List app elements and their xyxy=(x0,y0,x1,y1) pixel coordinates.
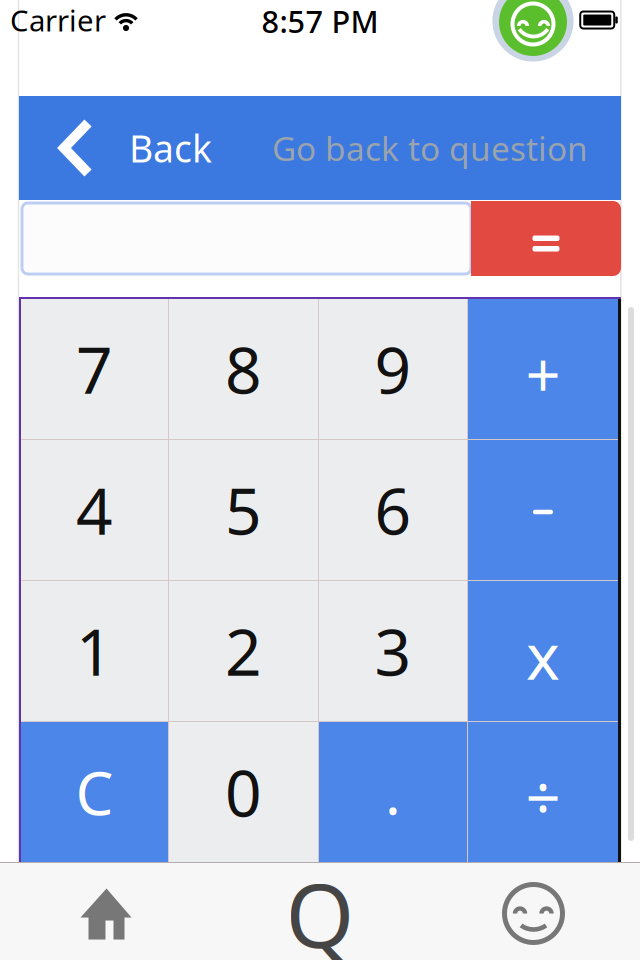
button[interactable]: ÷ xyxy=(468,722,618,862)
button[interactable]: 9 xyxy=(319,299,467,439)
button[interactable]: Back xyxy=(19,119,212,177)
staticText: Back xyxy=(129,123,212,173)
button[interactable]: 8 xyxy=(169,299,318,439)
button[interactable]: 4 xyxy=(21,440,168,580)
button[interactable]: 7 xyxy=(21,299,168,439)
button[interactable]: 0 xyxy=(169,722,318,862)
button[interactable]: 3 xyxy=(319,581,467,721)
button[interactable]: 6 xyxy=(319,440,467,580)
button[interactable]: x xyxy=(468,581,618,721)
staticText: x xyxy=(526,612,560,697)
staticText: ÷ xyxy=(525,756,560,838)
staticText: 5 xyxy=(225,467,262,552)
staticText: 1 xyxy=(76,608,113,693)
staticText: Carrier xyxy=(10,0,106,39)
button[interactable]: Questions xyxy=(213,863,427,960)
button[interactable]: + xyxy=(468,299,618,439)
staticText: Go back to question xyxy=(272,126,588,170)
button[interactable]: . xyxy=(319,722,467,862)
staticText: 6 xyxy=(374,467,411,552)
staticText: 8:57 PM xyxy=(261,1,378,41)
button[interactable]: Mood xyxy=(427,863,640,960)
button[interactable]: 1 xyxy=(21,581,168,721)
button[interactable]: C xyxy=(21,722,168,862)
staticText: + xyxy=(525,333,560,415)
staticText: 7 xyxy=(76,326,113,411)
button[interactable]: Mood xyxy=(490,0,576,64)
staticText: C xyxy=(75,752,113,832)
staticText: 4 xyxy=(76,467,113,552)
button[interactable] xyxy=(468,440,618,580)
staticText: 0 xyxy=(225,749,262,834)
staticText: . xyxy=(385,753,401,831)
button[interactable]: 5 xyxy=(169,440,318,580)
button[interactable]: Home xyxy=(0,863,213,960)
staticText: Q xyxy=(285,855,354,960)
staticText: 2 xyxy=(225,608,262,693)
staticText: 8 xyxy=(225,326,262,411)
button[interactable]: Go back to question xyxy=(272,126,621,170)
button[interactable]: 2 xyxy=(169,581,318,721)
staticText: 9 xyxy=(374,326,411,411)
staticText: 3 xyxy=(374,608,411,693)
button[interactable]: Equals xyxy=(471,201,621,276)
